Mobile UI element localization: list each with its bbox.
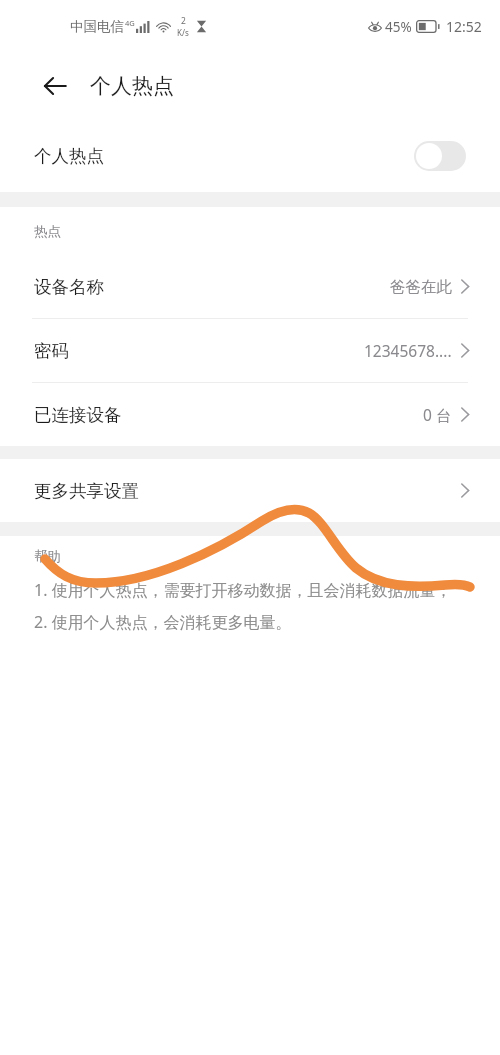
staticText: K/s (177, 27, 189, 38)
staticText: 45% (385, 18, 412, 36)
button[interactable]: 设备名称 (0, 255, 500, 318)
staticText: 12:52 (446, 17, 482, 36)
staticText: 4G (125, 18, 135, 28)
staticText: 热点 (34, 223, 61, 240)
other: 个人热点开关 (414, 141, 466, 171)
button[interactable]: 个人热点 (0, 120, 500, 192)
staticText: 0 台 (423, 404, 452, 425)
staticText: 2 (181, 15, 186, 27)
staticText: 已连接设备 (34, 404, 122, 426)
staticText: 1. 使用个人热点，需要打开移动数据，且会消耗数据流量； (34, 579, 452, 601)
staticText: 爸爸在此 (390, 277, 452, 297)
staticText: 个人热点 (34, 145, 104, 167)
staticText: 中国电信 (70, 18, 124, 35)
staticText: 2. 使用个人热点，会消耗更多电量。 (34, 611, 292, 633)
staticText: 密码 (34, 340, 69, 362)
staticText: 更多共享设置 (34, 480, 139, 502)
staticText: 12345678.... (364, 340, 452, 361)
button[interactable]: 密码 (0, 319, 500, 382)
button[interactable]: 返回 (30, 61, 80, 111)
button[interactable]: 更多共享设置 (0, 459, 500, 522)
staticText: 设备名称 (34, 276, 104, 298)
staticText: 帮助 (34, 548, 61, 565)
button[interactable]: 已连接设备 (0, 383, 500, 446)
staticText: 个人热点 (90, 73, 174, 99)
